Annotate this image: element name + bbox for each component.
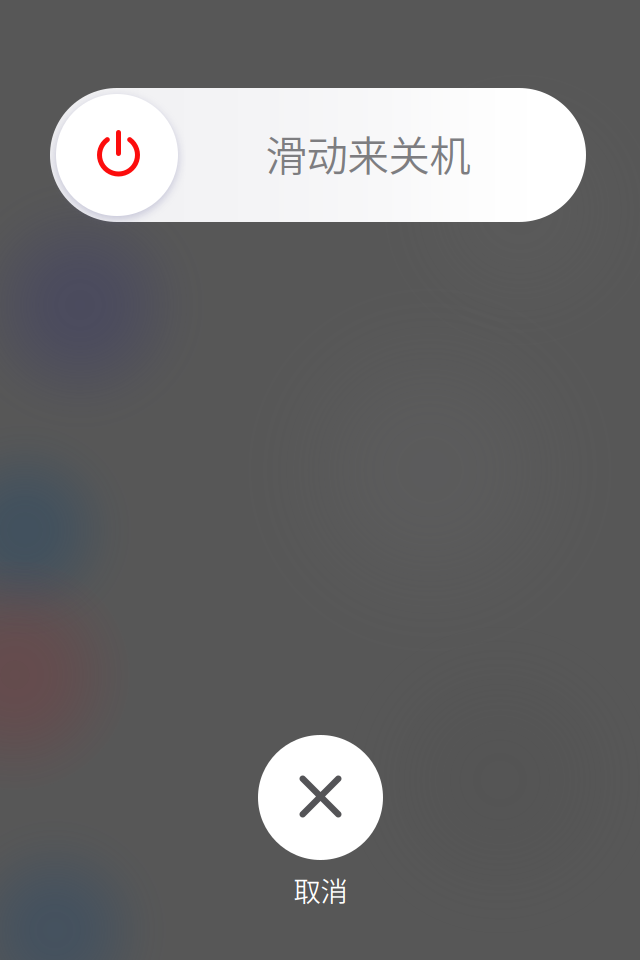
staticText: 滑动来关机: [265, 123, 470, 183]
button[interactable]: 取消: [258, 735, 383, 910]
button[interactable]: 滑动来关机: [50, 88, 586, 222]
staticText: 取消: [293, 870, 347, 910]
